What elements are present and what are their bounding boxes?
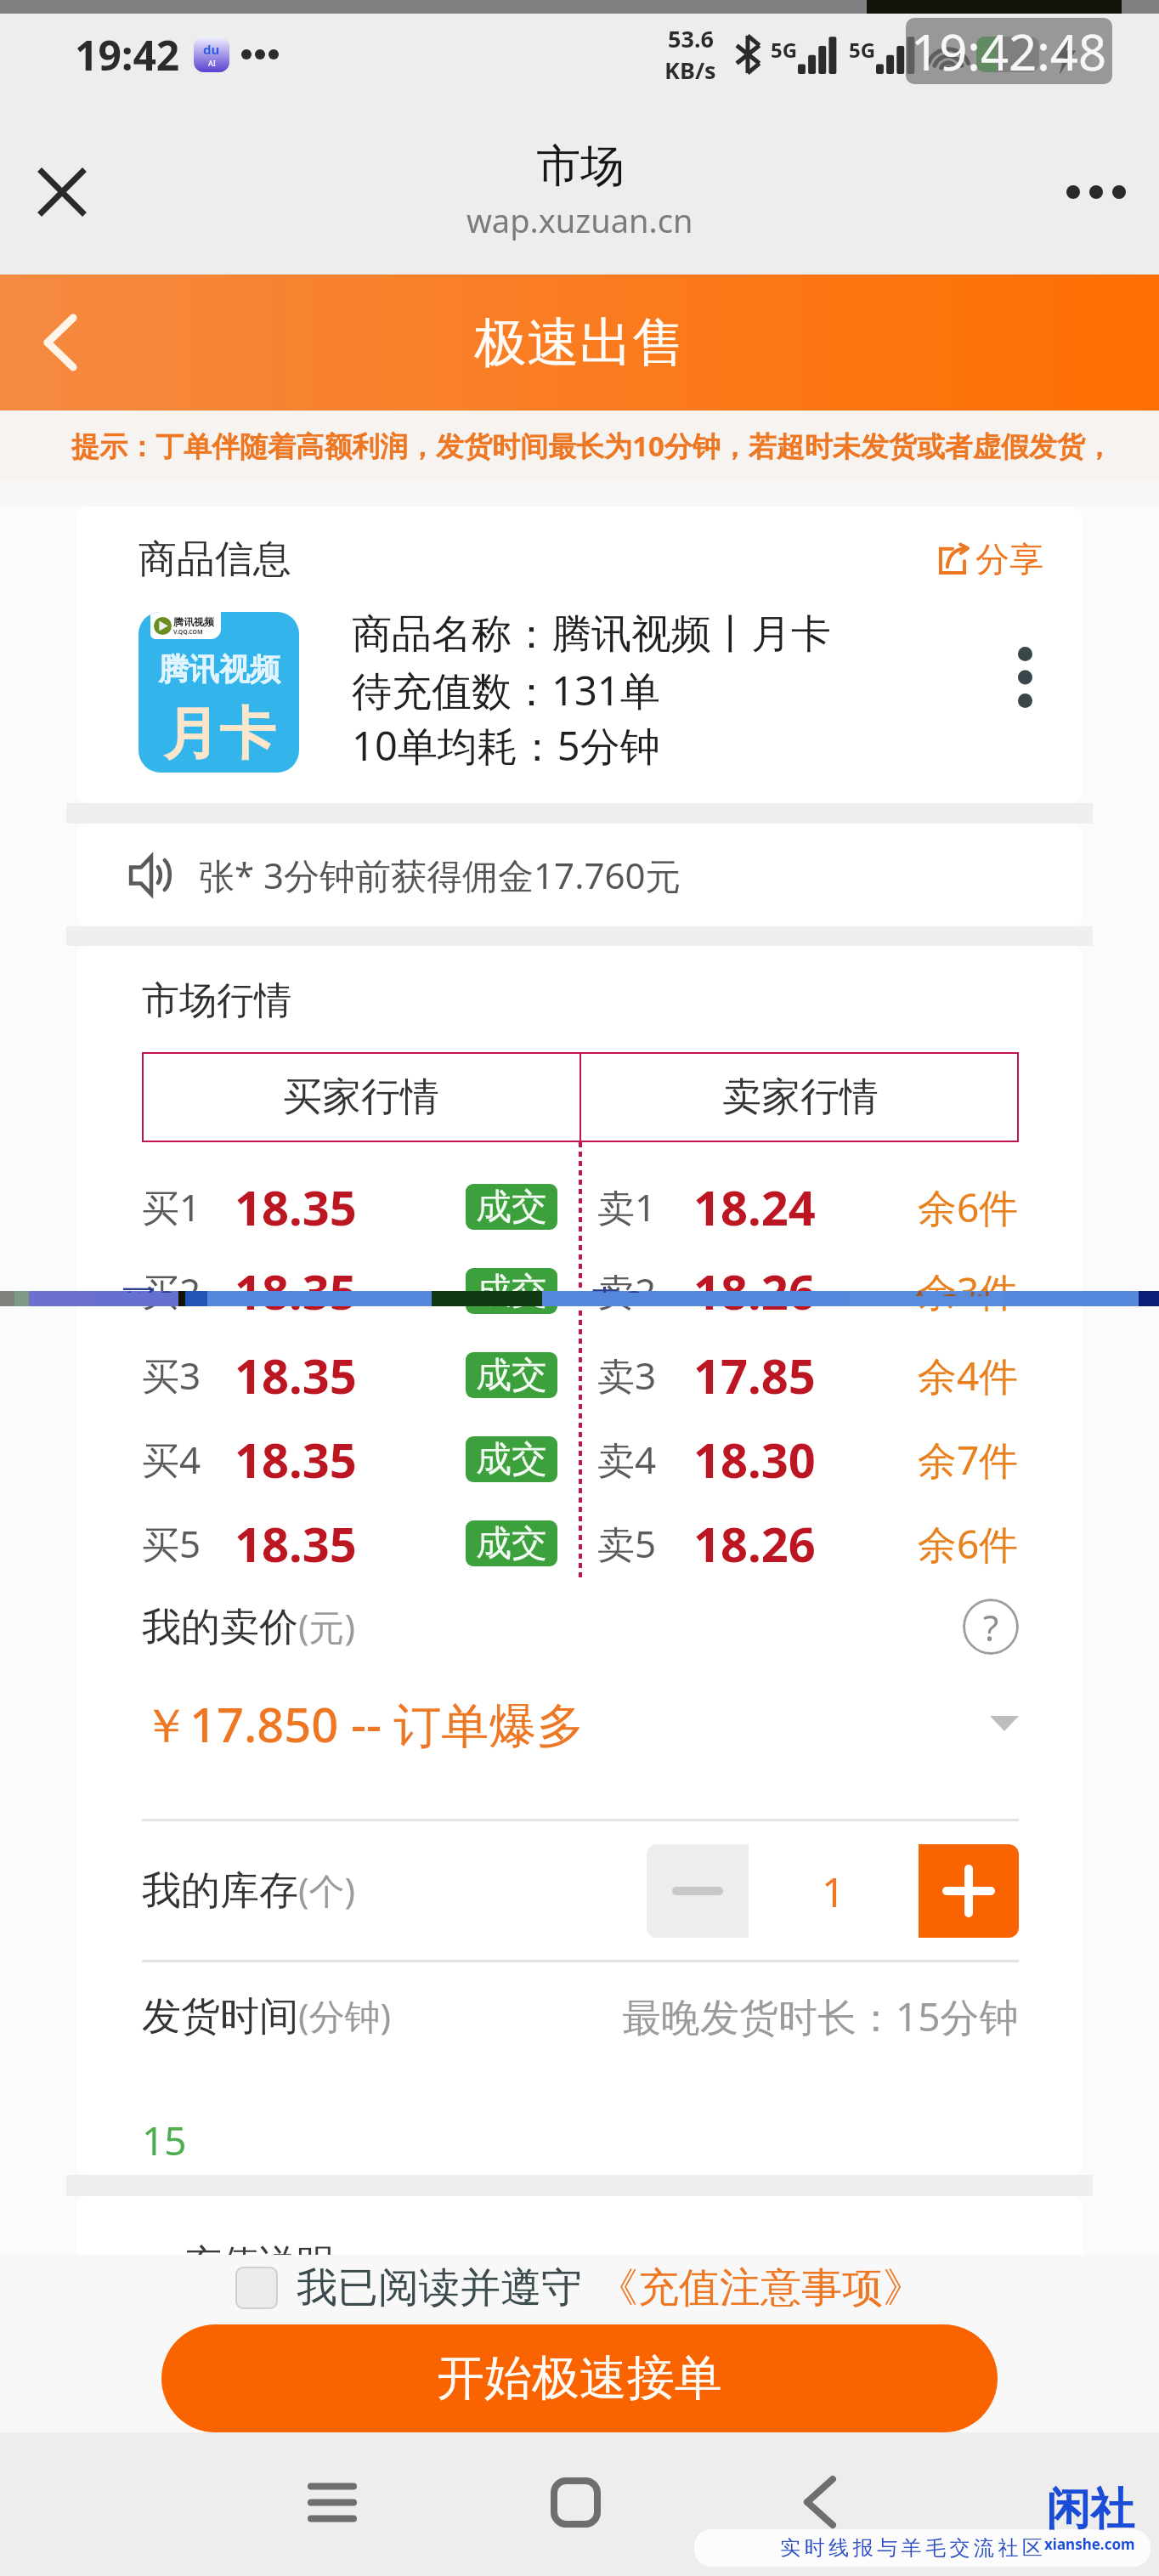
staticText: 余3件: [901, 1281, 1002, 1296]
button[interactable]: 成交: [466, 1184, 557, 1230]
staticText: V.QQ.COM: [173, 628, 203, 637]
staticText: 余4件: [918, 1349, 1019, 1402]
staticText: 腾讯视频: [158, 650, 280, 688]
staticText: (个): [298, 1865, 356, 1914]
button[interactable]: 开始极速接单: [161, 2324, 998, 2432]
staticText: 18.30: [693, 1427, 816, 1492]
staticText: 最晚发货时长：15分钟: [622, 1990, 1019, 2043]
staticText: 18.35: [235, 1175, 357, 1239]
staticText: 商品名称：腾讯视频丨月卡: [352, 609, 831, 660]
staticText: 分享: [975, 538, 1043, 580]
staticText: 卖1: [597, 1181, 657, 1232]
staticText: 余7件: [918, 1433, 1019, 1486]
button[interactable]: 成交: [466, 1268, 557, 1314]
staticText: 1: [822, 1864, 845, 1919]
staticText: 17.85: [693, 1343, 816, 1407]
staticText: 余6件: [918, 1517, 1019, 1571]
staticText: du: [203, 41, 220, 58]
staticText: 18.26: [693, 1259, 816, 1323]
staticText: 卖2: [597, 1265, 657, 1316]
staticText: 市场: [536, 139, 625, 195]
staticText: 买4: [142, 1434, 201, 1485]
button[interactable]: 张* 3分钟前获得佣金17.760元: [76, 824, 1083, 926]
staticText: 成交: [476, 1521, 547, 1566]
button[interactable]: Recents: [260, 2432, 404, 2572]
button[interactable]: 卖家行情: [581, 1052, 1019, 1142]
staticText: 张* 3分钟前获得佣金17.760元: [199, 851, 681, 899]
staticText: 18.35: [212, 1277, 334, 1293]
staticText: 提示：丁单伴随着高额利润，发货时间最长为10分钟，若超时未发货或者虚假发货，: [71, 427, 1159, 465]
staticText: 极速出售: [474, 309, 685, 376]
staticText: 18.35: [235, 1427, 357, 1492]
staticText: 商品信息: [139, 535, 291, 584]
staticText: 闲社: [1046, 2482, 1134, 2538]
staticText: 5G: [771, 36, 798, 64]
staticText: 成交: [476, 1185, 547, 1230]
button[interactable]: More options: [1054, 150, 1139, 235]
button[interactable]: Help: [963, 1599, 1019, 1655]
button[interactable]: 买家行情: [142, 1052, 579, 1142]
staticText: 18.24: [693, 1175, 816, 1239]
staticText: ?: [983, 1603, 999, 1651]
staticText: (元): [298, 1602, 356, 1650]
staticText: 《充值注意事项》: [597, 2262, 924, 2313]
staticText: 卖3: [597, 1350, 657, 1401]
staticText: 15: [142, 2114, 187, 2167]
button[interactable]: Back: [14, 296, 107, 389]
staticText: 买2: [142, 1265, 201, 1316]
staticText: 成交: [476, 1353, 547, 1398]
button[interactable]: 我已阅读并遵守: [235, 2262, 924, 2313]
staticText: AI: [208, 58, 216, 68]
staticText: wap.xuzuan.cn: [466, 198, 693, 242]
staticText: 买家行情: [283, 1073, 439, 1122]
staticText: 买1: [142, 1181, 201, 1232]
staticText: 我已阅读并遵守: [297, 2262, 582, 2313]
staticText: 18.35: [235, 1511, 357, 1576]
staticText: 卖4: [597, 1434, 657, 1485]
staticText: 买5: [142, 1518, 201, 1569]
button[interactable]: 分享: [931, 535, 1049, 584]
staticText: 充值说明: [184, 2240, 334, 2255]
staticText: 腾讯视频: [173, 615, 214, 628]
staticText: 余3件: [918, 1265, 1019, 1318]
button[interactable]: Item menu: [1001, 631, 1049, 724]
button[interactable]: Back: [748, 2432, 892, 2572]
button[interactable]: 商品信息: [76, 507, 1083, 803]
staticText: 发货时间: [142, 1992, 298, 2041]
staticText: 5G: [849, 36, 876, 64]
staticText: 19:42:48: [911, 18, 1107, 84]
button[interactable]: Decrease: [647, 1844, 749, 1938]
button[interactable]: 成交: [466, 1352, 557, 1398]
staticText: 卖5: [597, 1518, 657, 1569]
staticText: KB/s: [664, 54, 716, 86]
staticText: ￥17.850 -- 订单爆多: [142, 1691, 585, 1756]
staticText: 开始极速接单: [437, 2348, 722, 2409]
staticText: (分钟): [298, 1991, 392, 2040]
button[interactable]: 成交: [466, 1520, 557, 1566]
staticText: 买2: [119, 1277, 178, 1293]
button[interactable]: ￥17.850 -- 订单爆多: [142, 1668, 1019, 1779]
staticText: xianshe.com: [1044, 2534, 1135, 2554]
staticText: 18.26: [693, 1511, 816, 1576]
button[interactable]: 成交: [466, 1436, 557, 1482]
staticText: 待充值数：131单: [352, 663, 660, 717]
staticText: 18.35: [235, 1259, 357, 1323]
staticText: 卖2: [586, 1277, 646, 1293]
staticText: 53.6: [668, 23, 714, 54]
staticText: 实时线报与羊毛交流社区: [780, 2535, 1047, 2561]
staticText: 市场行情: [142, 977, 291, 1024]
staticText: 19:42: [75, 27, 180, 82]
button[interactable]: Close: [25, 156, 98, 228]
staticText: 成交: [476, 1269, 547, 1314]
staticText: 买3: [142, 1350, 201, 1401]
staticText: 成交: [476, 1437, 547, 1482]
button[interactable]: Home: [503, 2432, 647, 2572]
staticText: 月卡: [163, 699, 275, 769]
button[interactable]: Increase: [919, 1844, 1019, 1938]
staticText: 18.35: [235, 1343, 357, 1407]
staticText: 我的库存: [142, 1866, 298, 1916]
staticText: 卖家行情: [722, 1073, 879, 1122]
staticText: 18.26: [682, 1277, 805, 1293]
staticText: 余6件: [918, 1180, 1019, 1234]
staticText: 10单均耗：5分钟: [352, 718, 660, 773]
